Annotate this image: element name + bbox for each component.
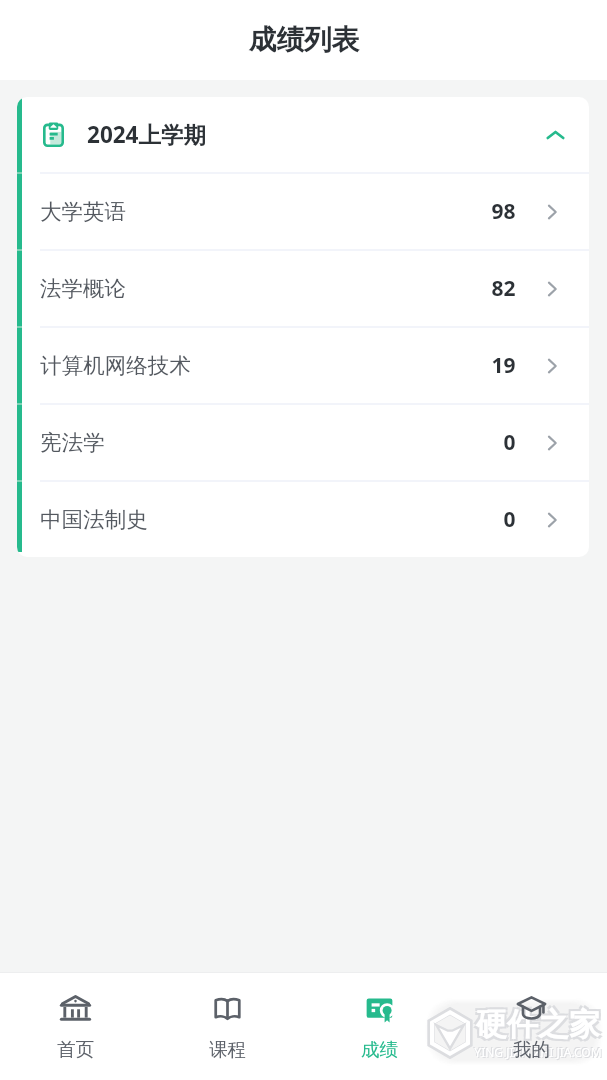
- button[interactable]: 成绩: [303, 973, 455, 1080]
- button[interactable]: Collapse: [533, 113, 577, 157]
- button[interactable]: 首页: [0, 973, 151, 1080]
- staticText: 硬件之家: [478, 1007, 602, 1046]
- staticText: 课程: [209, 1038, 246, 1061]
- other: 首页: [60, 993, 91, 1024]
- staticText: 中国法制史: [40, 506, 148, 533]
- button[interactable]: 法学概论: [17, 251, 589, 326]
- staticText: 0: [503, 428, 516, 457]
- staticText: 硬件之家: [476, 1005, 600, 1044]
- staticText: 成绩: [361, 1038, 398, 1061]
- staticText: 19: [491, 351, 516, 380]
- staticText: YING JIAN ZHI JIA.COM: [473, 1043, 601, 1059]
- staticText: 硬件之家: [474, 1003, 598, 1042]
- staticText: 0: [503, 505, 516, 534]
- staticText: 大学英语: [40, 198, 126, 225]
- button[interactable]: 宪法学: [17, 405, 589, 480]
- staticText: 法学概论: [40, 275, 126, 302]
- staticText: 宪法学: [40, 429, 105, 456]
- staticText: 我的: [513, 1038, 550, 1061]
- other: 成绩: [364, 993, 395, 1024]
- staticText: 首页: [57, 1038, 94, 1061]
- staticText: 硬件之家: [478, 1003, 602, 1042]
- staticText: 硬件之家: [474, 1007, 598, 1046]
- other: 我的: [516, 993, 547, 1024]
- staticText: 98: [491, 197, 516, 226]
- button[interactable]: 大学英语: [17, 174, 589, 249]
- staticText: 计算机网络技术: [40, 352, 191, 379]
- button[interactable]: 2024上学期: [17, 97, 589, 172]
- staticText: YING JIAN ZHI JIA.COM: [474, 1044, 602, 1060]
- staticText: 成绩列表: [249, 23, 359, 58]
- staticText: 2024上学期: [87, 119, 206, 150]
- staticText: YING JIAN ZHI JIA.COM: [475, 1045, 603, 1061]
- staticText: 82: [491, 274, 516, 303]
- button[interactable]: 课程: [151, 973, 303, 1080]
- other: 课程: [212, 993, 243, 1024]
- button[interactable]: 我的: [455, 973, 607, 1080]
- button[interactable]: 计算机网络技术: [17, 328, 589, 403]
- button[interactable]: 中国法制史: [17, 482, 589, 557]
